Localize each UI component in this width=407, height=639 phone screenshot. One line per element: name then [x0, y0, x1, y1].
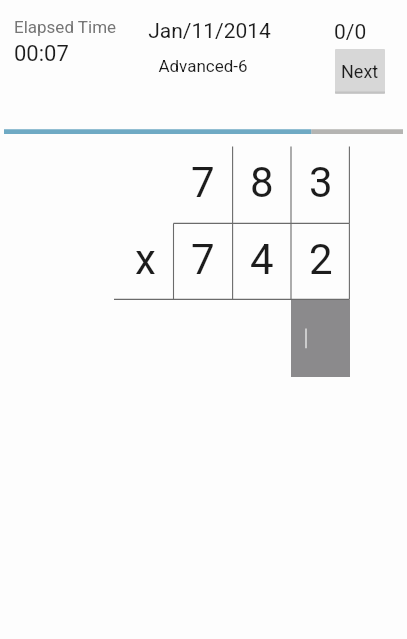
button[interactable]: 4 [233, 221, 291, 297]
staticText: 00:07 [14, 41, 69, 67]
button[interactable]: 8 [233, 144, 291, 220]
button[interactable]: Elapsed Time [14, 17, 118, 67]
staticText: x [135, 235, 156, 284]
staticText: 2 [309, 235, 333, 284]
staticText: 3 [309, 158, 333, 207]
staticText: Next [341, 61, 379, 82]
button[interactable]: 3 [292, 144, 350, 220]
button[interactable]: 7 [174, 221, 232, 297]
staticText: 7 [191, 235, 215, 284]
staticText: Advanced-6 [158, 56, 248, 76]
button[interactable]: x [116, 221, 174, 297]
staticText: 4 [250, 235, 274, 284]
button[interactable]: Answer digit, units column [291, 300, 350, 377]
staticText: 0/0 [334, 20, 367, 42]
staticText: 8 [250, 158, 274, 207]
button[interactable]: Next [335, 49, 385, 94]
staticText: 7 [191, 158, 215, 207]
button[interactable]: 7 [174, 144, 232, 220]
staticText: Jan/11/2014 [148, 19, 271, 44]
button[interactable]: 2 [292, 221, 350, 297]
staticText: Elapsed Time [14, 17, 117, 37]
